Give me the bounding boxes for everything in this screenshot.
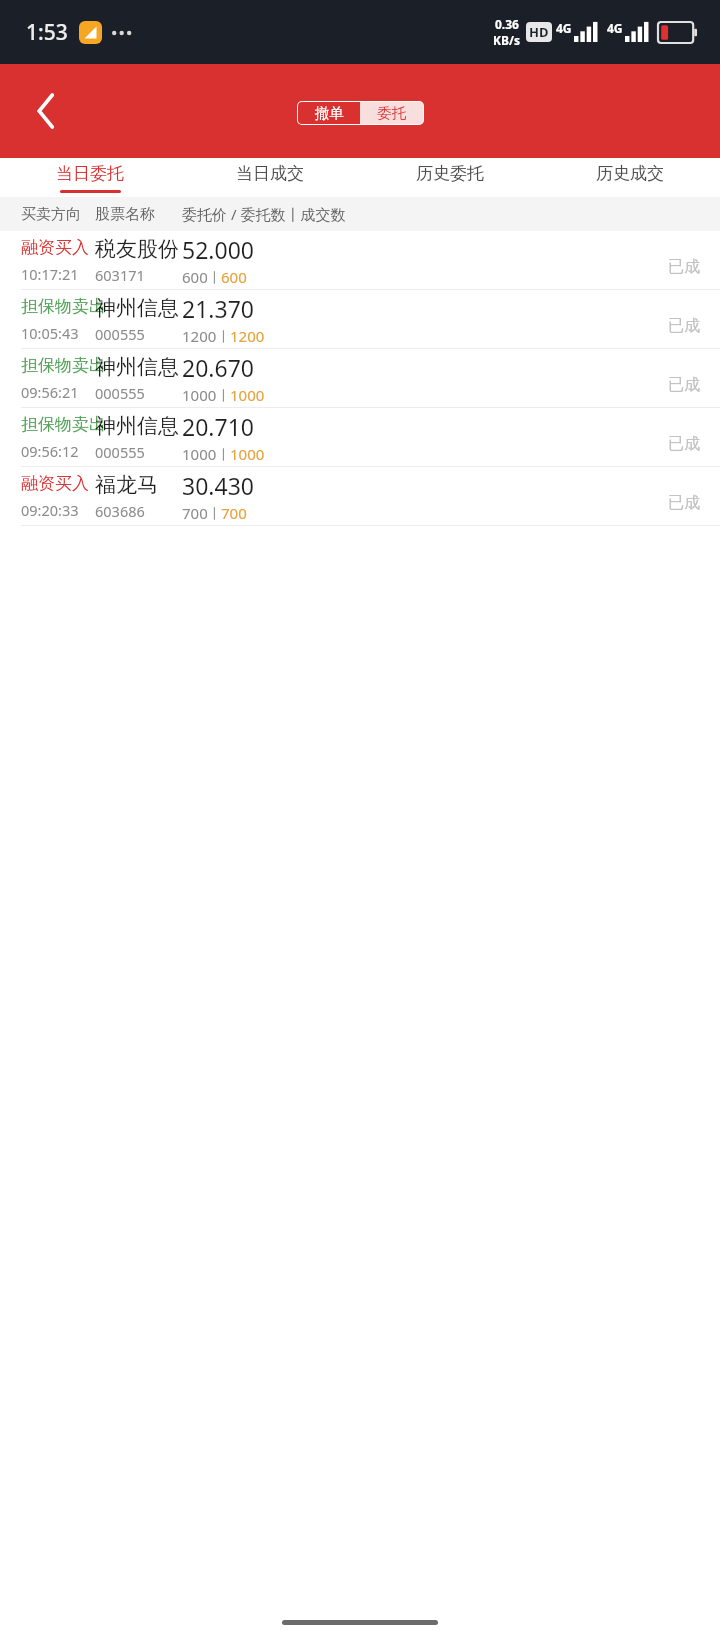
staticText: 20.710 [182, 411, 254, 442]
staticText: 已成 [668, 257, 700, 277]
button[interactable]: 融资买入 [0, 467, 720, 526]
button[interactable]: 担保物卖出 [0, 408, 720, 467]
staticText: 当日委托 [56, 163, 124, 184]
staticText: 丨 [217, 387, 230, 403]
staticText: 丨 [208, 269, 221, 285]
button[interactable]: 担保物卖出 [0, 290, 720, 349]
staticText: 000555 [95, 324, 145, 344]
button[interactable]: 撤单 [298, 102, 360, 124]
staticText: 已成 [668, 493, 700, 513]
staticText: 融资买入 [21, 473, 89, 494]
staticText: 当日成交 [236, 163, 304, 184]
staticText: 603171 [95, 265, 145, 285]
staticText: 000555 [95, 442, 145, 462]
staticText: 09:20:33 [21, 500, 79, 520]
staticText: 委托价 / 委托数丨成交数 [182, 204, 346, 224]
staticText: 撤单 [315, 104, 344, 122]
staticText: 1200 [182, 326, 217, 346]
button[interactable]: 融资买入 [0, 231, 720, 290]
staticText: 担保物卖出 [21, 414, 106, 435]
button[interactable]: Back [18, 83, 74, 139]
staticText: 0.36 [495, 16, 519, 32]
staticText: 600 [221, 267, 247, 287]
staticText: 丨 [217, 446, 230, 462]
staticText: 603686 [95, 501, 145, 521]
staticText: 税友股份 [95, 236, 179, 262]
staticText: 700 [221, 503, 247, 523]
staticText: 历史成交 [596, 163, 664, 184]
button[interactable]: 担保物卖出 [0, 349, 720, 408]
staticText: 1000 [230, 385, 265, 405]
staticText: 10:05:43 [21, 323, 79, 343]
staticText: 委托 [377, 104, 406, 122]
staticText: 52.000 [182, 234, 254, 265]
staticText: 已成 [668, 316, 700, 336]
button[interactable]: 历史委托 [360, 158, 540, 197]
staticText: 福龙马 [95, 472, 158, 498]
staticText: 1000 [182, 385, 217, 405]
staticText: 09:56:12 [21, 441, 79, 461]
staticText: 1200 [230, 326, 265, 346]
staticText: 21.370 [182, 293, 254, 324]
staticText: 000555 [95, 383, 145, 403]
staticText: 买卖方向 [21, 205, 81, 224]
staticText: 股票名称 [95, 205, 155, 224]
staticText: 担保物卖出 [21, 355, 106, 376]
staticText: 30.430 [182, 470, 254, 501]
staticText: 担保物卖出 [21, 296, 106, 317]
staticText: 丨 [208, 505, 221, 521]
staticText: 20.670 [182, 352, 254, 383]
staticText: KB/s [493, 32, 520, 48]
staticText: 历史委托 [416, 163, 484, 184]
staticText: 融资买入 [21, 237, 89, 258]
staticText: 神州信息 [95, 354, 179, 380]
staticText: 已成 [668, 434, 700, 454]
button[interactable]: 当日委托 [0, 158, 180, 197]
staticText: 神州信息 [95, 413, 179, 439]
staticText: 700 [182, 503, 208, 523]
staticText: 已成 [668, 375, 700, 395]
staticText: 4G [607, 20, 623, 36]
button[interactable]: 历史成交 [540, 158, 720, 197]
button[interactable]: 委托 [360, 102, 423, 124]
staticText: 10:17:21 [21, 264, 79, 284]
staticText: 1:53 [26, 18, 68, 47]
button[interactable]: 当日成交 [180, 158, 360, 197]
staticText: 1000 [230, 444, 265, 464]
staticText: 4G [556, 20, 572, 36]
staticText: 1000 [182, 444, 217, 464]
staticText: HD [529, 23, 549, 41]
staticText: 600 [182, 267, 208, 287]
staticText: 丨 [217, 328, 230, 344]
staticText: 09:56:21 [21, 382, 79, 402]
staticText: 神州信息 [95, 295, 179, 321]
